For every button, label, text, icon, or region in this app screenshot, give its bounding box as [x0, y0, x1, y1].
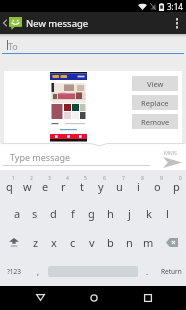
button[interactable]: Recent apps — [135, 290, 161, 305]
staticText: r — [61, 179, 66, 194]
staticText: b — [107, 235, 114, 250]
staticText: 4 — [66, 175, 69, 182]
button[interactable]: a — [8, 199, 26, 228]
button[interactable]: x — [45, 228, 63, 257]
button[interactable]: View — [132, 76, 178, 91]
staticText: g — [88, 206, 95, 221]
button[interactable]: . — [138, 257, 156, 286]
button[interactable]: Delete — [158, 228, 186, 257]
staticText: 3 — [48, 175, 51, 182]
button[interactable]: 0 — [167, 170, 186, 199]
staticText: w — [23, 179, 32, 194]
button[interactable]: More options — [168, 12, 186, 34]
staticText: Replace — [141, 98, 169, 108]
staticText: MMS — [164, 149, 177, 156]
staticText: k — [146, 206, 152, 221]
button[interactable]: h — [101, 199, 120, 228]
staticText: s — [32, 206, 38, 221]
staticText: 0 — [179, 175, 182, 182]
staticText: z — [33, 235, 39, 250]
staticText: n — [126, 235, 133, 250]
button[interactable]: 4 — [54, 170, 72, 199]
button[interactable]: g — [82, 199, 101, 228]
button[interactable]: 9 — [148, 170, 167, 199]
staticText: Type message — [10, 151, 71, 163]
staticText: Return — [161, 267, 182, 276]
button[interactable]: 7 — [110, 170, 129, 199]
button[interactable]: s — [26, 199, 44, 228]
staticText: j — [128, 206, 131, 221]
staticText: a — [14, 206, 21, 221]
button[interactable]: Remove — [132, 114, 178, 129]
staticText: p — [173, 179, 180, 194]
staticText: x — [51, 235, 57, 250]
staticText: v — [89, 235, 95, 250]
button[interactable]: Replace — [132, 95, 178, 110]
staticText: , — [37, 266, 40, 277]
staticText: y — [98, 179, 104, 194]
staticText: View — [147, 79, 164, 89]
staticText: o — [154, 179, 161, 194]
button[interactable]: 6 — [91, 170, 110, 199]
staticText: 2 — [30, 175, 33, 182]
button[interactable]: z — [27, 228, 45, 257]
button[interactable]: b — [101, 228, 120, 257]
button[interactable]: Shift — [0, 228, 27, 257]
staticText: 3:14 — [167, 1, 183, 12]
button[interactable]: c — [63, 228, 82, 257]
staticText: 5 — [84, 175, 87, 182]
button[interactable]: Return — [156, 257, 186, 286]
staticText: u — [116, 179, 123, 194]
button[interactable]: m — [139, 228, 158, 257]
staticText: t — [80, 179, 84, 194]
staticText: e — [42, 179, 49, 194]
button[interactable]: 3 — [36, 170, 54, 199]
button[interactable]: Home — [81, 290, 107, 305]
staticText: New message — [26, 17, 89, 30]
staticText: 8 — [141, 175, 144, 182]
button[interactable]: Back — [27, 290, 53, 305]
button[interactable]: , — [28, 257, 48, 286]
staticText: . — [146, 266, 149, 277]
button[interactable]: l — [158, 199, 177, 228]
staticText: q — [6, 179, 13, 194]
button[interactable]: k — [139, 199, 158, 228]
staticText: c — [70, 235, 76, 250]
staticText: d — [50, 206, 57, 221]
button[interactable]: v — [82, 228, 101, 257]
staticText: ?123 — [7, 267, 21, 276]
staticText: h — [107, 206, 114, 221]
button[interactable]: ?123 — [0, 257, 28, 286]
staticText: To — [8, 40, 18, 52]
staticText: Remove — [141, 117, 170, 127]
staticText: 9 — [160, 175, 163, 182]
button[interactable]: Navigate up — [0, 12, 23, 34]
button[interactable]: j — [120, 199, 139, 228]
staticText: m — [143, 235, 154, 250]
button[interactable]: d — [44, 199, 63, 228]
staticText: l — [166, 206, 169, 221]
button[interactable]: 5 — [72, 170, 91, 199]
staticText: f — [71, 206, 75, 221]
button[interactable]: 1 — [0, 170, 18, 199]
button[interactable]: Send — [160, 155, 184, 169]
button[interactable]: n — [120, 228, 139, 257]
staticText: 7 — [122, 175, 125, 182]
staticText: 1 — [12, 175, 15, 182]
button[interactable]: 8 — [129, 170, 148, 199]
button[interactable]: f — [63, 199, 82, 228]
staticText: i — [137, 179, 140, 194]
button[interactable]: 2 — [18, 170, 36, 199]
staticText: 6 — [103, 175, 106, 182]
